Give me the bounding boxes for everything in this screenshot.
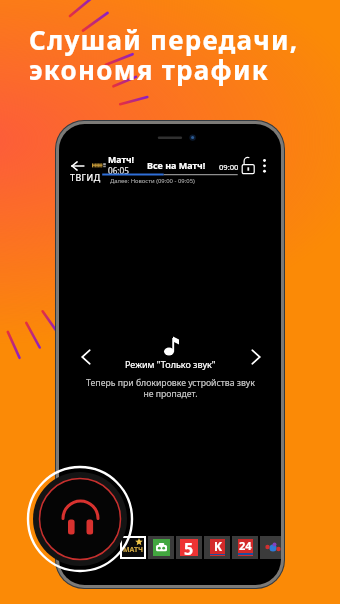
- button[interactable]: [148, 536, 174, 559]
- staticText: ТВГИД: [70, 172, 101, 184]
- staticText: K: [214, 538, 222, 554]
- button[interactable]: K: [204, 536, 230, 559]
- staticText: 5: [184, 538, 194, 555]
- button[interactable]: Next: [251, 349, 261, 365]
- staticText: 06:05: [108, 165, 129, 176]
- staticText: Теперь при блокировке устройства звук не…: [86, 377, 255, 400]
- staticText: Слушай передачи, экономя трафик: [29, 22, 299, 88]
- staticText: Режим "Только звук": [125, 358, 216, 370]
- staticText: 24: [239, 538, 252, 553]
- button[interactable]: МАТЧ: [122, 538, 144, 557]
- button[interactable]: [260, 536, 281, 559]
- staticText: Матч!: [108, 154, 134, 166]
- button[interactable]: Sound only mode: [28, 467, 132, 571]
- button[interactable]: Lock screen: [241, 156, 256, 175]
- button[interactable]: More options: [260, 157, 269, 176]
- button[interactable]: 24: [232, 536, 258, 559]
- button[interactable]: Previous: [81, 349, 91, 365]
- staticText: Далее: Новости (09:00 - 09:05): [110, 177, 195, 185]
- button[interactable]: Back: [70, 160, 85, 172]
- staticText: Все на Матч!: [147, 159, 206, 171]
- staticText: МАТЧ: [123, 545, 144, 555]
- button[interactable]: 5: [176, 536, 202, 559]
- staticText: 09:00: [219, 162, 239, 172]
